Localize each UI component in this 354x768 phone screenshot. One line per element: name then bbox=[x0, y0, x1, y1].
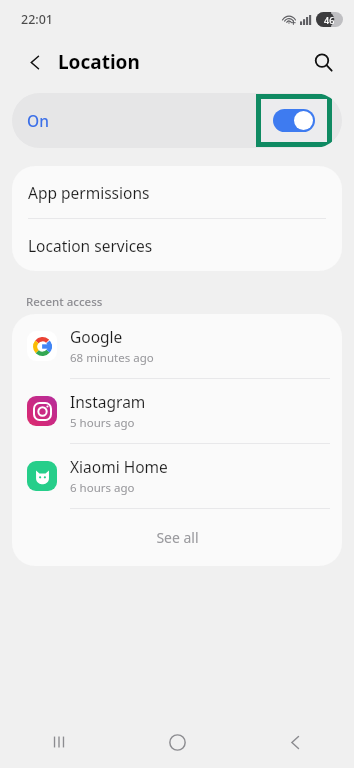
staticText: App permissions bbox=[28, 182, 150, 203]
button[interactable]: Location on bbox=[273, 109, 315, 132]
staticText: Recent access bbox=[26, 294, 103, 310]
staticText: Location bbox=[58, 49, 140, 75]
button[interactable]: Search bbox=[306, 45, 340, 79]
staticText: See all bbox=[156, 528, 199, 547]
staticText: 68 minutes ago bbox=[70, 350, 154, 366]
staticText: Location services bbox=[28, 235, 153, 256]
staticText: On bbox=[27, 110, 49, 131]
staticText: 22:01 bbox=[21, 11, 54, 28]
staticText: Instagram bbox=[70, 391, 146, 412]
staticText: Xiaomi Home bbox=[70, 456, 168, 477]
button[interactable]: App permissions bbox=[12, 166, 342, 218]
staticText: 5 hours ago bbox=[70, 415, 135, 431]
button[interactable]: Google bbox=[12, 314, 342, 378]
button[interactable]: On bbox=[12, 93, 342, 148]
button[interactable]: Instagram bbox=[12, 379, 342, 443]
button[interactable]: Recents bbox=[0, 716, 118, 768]
staticText: 46 bbox=[324, 14, 335, 26]
button[interactable]: Xiaomi Home bbox=[12, 444, 342, 508]
button[interactable]: Location services bbox=[12, 219, 342, 271]
button[interactable]: See all bbox=[12, 509, 342, 566]
staticText: Google bbox=[70, 326, 123, 347]
button[interactable]: Back bbox=[18, 45, 52, 79]
button[interactable]: Back bbox=[236, 716, 354, 768]
staticText: 6 hours ago bbox=[70, 480, 135, 496]
button[interactable]: Home bbox=[118, 716, 236, 768]
